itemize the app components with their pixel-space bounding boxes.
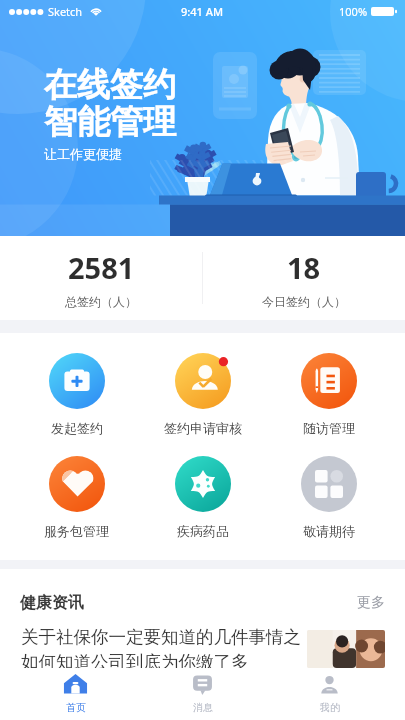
staticText: 健康资讯 [20, 593, 84, 613]
staticText: Sketch [48, 4, 83, 19]
staticText: 9:41 AM [181, 4, 224, 19]
button[interactable]: 敬请期待 [266, 456, 392, 539]
button[interactable]: 签约申请审核 [140, 353, 266, 436]
staticText: 在线签约 智能管理 [44, 64, 176, 143]
button[interactable]: 消息 [139, 668, 266, 720]
button[interactable]: 我的 [266, 668, 393, 720]
button[interactable]: 服务包管理 [13, 456, 140, 539]
staticText: 敬请期待 [303, 523, 355, 539]
staticText: 让工作更便捷 [44, 146, 122, 162]
staticText: 签约申请审核 [164, 420, 242, 436]
staticText: 更多 [357, 594, 385, 612]
button[interactable]: 首页 [12, 668, 139, 720]
button[interactable]: 发起签约 [13, 353, 140, 436]
staticText: 首页 [66, 701, 86, 714]
staticText: 服务包管理 [44, 523, 109, 539]
staticText: 今日签约（人） [262, 294, 346, 309]
staticText: 总签约（人） [65, 294, 137, 309]
staticText: 消息 [193, 701, 213, 714]
button[interactable]: 更多 [357, 594, 385, 612]
button[interactable]: 关于社保你一定要知道的几件事情之如何知道公司到底为你缴了多 [0, 626, 405, 674]
staticText: 随访管理 [303, 420, 355, 436]
staticText: 关于社保你一定要知道的几件事情之如何知道公司到底为你缴了多 [21, 626, 301, 674]
button[interactable]: 随访管理 [266, 353, 392, 436]
staticText: 100% [339, 4, 368, 19]
staticText: 18 [287, 248, 321, 287]
staticText: 发起签约 [51, 420, 103, 436]
staticText: 2581 [68, 248, 135, 287]
button[interactable]: 疾病药品 [140, 456, 266, 539]
staticText: 疾病药品 [177, 523, 229, 539]
staticText: 我的 [320, 701, 340, 714]
